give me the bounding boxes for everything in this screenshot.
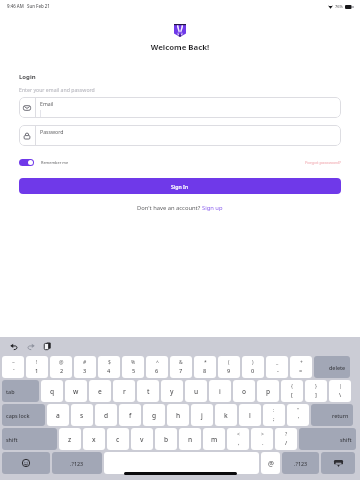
button[interactable]: Sign up [202, 204, 223, 212]
button[interactable]: + [290, 356, 312, 378]
button[interactable]: z [59, 428, 81, 450]
button[interactable]: b [155, 428, 177, 450]
staticText: } [315, 383, 317, 390]
staticText: s [80, 411, 84, 420]
button[interactable]: o [233, 380, 255, 402]
button[interactable]: delete [314, 356, 350, 378]
button[interactable]: shift [2, 428, 57, 450]
staticText: Sign In [171, 183, 189, 190]
button[interactable]: _ [266, 356, 288, 378]
button[interactable]: f [119, 404, 141, 426]
button[interactable]: ) [242, 356, 264, 378]
button[interactable]: h [167, 404, 189, 426]
button[interactable]: q [41, 380, 63, 402]
staticText: v [140, 435, 144, 444]
staticText: 9:46 AM [7, 3, 24, 9]
staticText: n [188, 435, 193, 444]
button[interactable]: caps lock [2, 404, 45, 426]
button[interactable]: ^ [146, 356, 168, 378]
button[interactable]: tab [2, 380, 39, 402]
staticText: 0 [251, 367, 255, 375]
button[interactable]: p [257, 380, 279, 402]
staticText: c [116, 435, 120, 444]
button[interactable]: w [65, 380, 87, 402]
staticText: . [262, 439, 264, 447]
staticText: { [291, 383, 293, 390]
staticText: = [299, 367, 303, 375]
button[interactable]: g [143, 404, 165, 426]
button[interactable]: $ [98, 356, 120, 378]
staticText: ' [298, 415, 300, 423]
staticText: : [273, 407, 275, 414]
button[interactable]: ~ [2, 356, 24, 378]
button[interactable]: return [311, 404, 353, 426]
button[interactable]: | [329, 380, 351, 402]
button[interactable] [2, 452, 50, 474]
button[interactable]: k [215, 404, 237, 426]
button[interactable]: j [191, 404, 213, 426]
button[interactable]: u [185, 380, 207, 402]
button[interactable]: l [239, 404, 261, 426]
button[interactable]: shift [299, 428, 356, 450]
staticText: ( [228, 359, 230, 366]
button[interactable]: # [74, 356, 96, 378]
button[interactable]: s [71, 404, 93, 426]
staticText: ` [13, 367, 15, 375]
button[interactable]: .?123 [282, 452, 319, 474]
button[interactable]: ! [26, 356, 48, 378]
button[interactable]: a [47, 404, 69, 426]
button[interactable]: > [251, 428, 273, 450]
staticText: $ [108, 359, 111, 366]
button[interactable]: d [95, 404, 117, 426]
button[interactable]: Sign In [19, 178, 341, 194]
button[interactable]: < [227, 428, 249, 450]
button[interactable]: % [122, 356, 144, 378]
button[interactable]: @ [50, 356, 72, 378]
button[interactable]: e [89, 380, 111, 402]
staticText: , [238, 439, 240, 447]
button[interactable]: Remember me [19, 159, 69, 166]
button[interactable]: Redo [27, 343, 35, 350]
staticText: " [297, 407, 300, 414]
button[interactable]: i [209, 380, 231, 402]
button[interactable]: c [107, 428, 129, 450]
staticText: f [129, 411, 132, 420]
staticText: tab [6, 388, 15, 395]
button[interactable]: { [281, 380, 303, 402]
button[interactable]: @ [261, 452, 280, 474]
staticText: @ [268, 459, 274, 468]
staticText: & [179, 359, 183, 366]
button[interactable]: : [263, 404, 285, 426]
button[interactable]: y [161, 380, 183, 402]
staticText: t [147, 387, 150, 396]
button[interactable]: r [113, 380, 135, 402]
button[interactable]: } [305, 380, 327, 402]
button[interactable]: t [137, 380, 159, 402]
button[interactable]: " [287, 404, 309, 426]
button[interactable]: v [131, 428, 153, 450]
button[interactable]: Undo [10, 343, 18, 350]
button[interactable]: Password [19, 125, 341, 146]
button[interactable]: .?123 [52, 452, 102, 474]
button[interactable]: ( [218, 356, 240, 378]
button[interactable]: x [83, 428, 105, 450]
button[interactable]: Paste [44, 342, 51, 350]
staticText: shift [340, 436, 352, 443]
staticText: ~ [12, 359, 15, 366]
button[interactable]: m [203, 428, 225, 450]
button[interactable] [321, 452, 355, 474]
button[interactable]: & [170, 356, 192, 378]
staticText: 8 [203, 367, 207, 375]
button[interactable]: Forgot password? [305, 159, 341, 165]
staticText: / [285, 439, 288, 447]
button[interactable]: Email [19, 97, 341, 118]
button[interactable]: n [179, 428, 201, 450]
button[interactable]: ? [275, 428, 297, 450]
staticText: ^ [156, 359, 159, 366]
staticText: ! [36, 359, 38, 366]
staticText: Login [19, 73, 36, 81]
button[interactable] [104, 452, 259, 474]
staticText: .?123 [294, 460, 308, 467]
staticText: j [201, 411, 203, 420]
button[interactable]: * [194, 356, 216, 378]
